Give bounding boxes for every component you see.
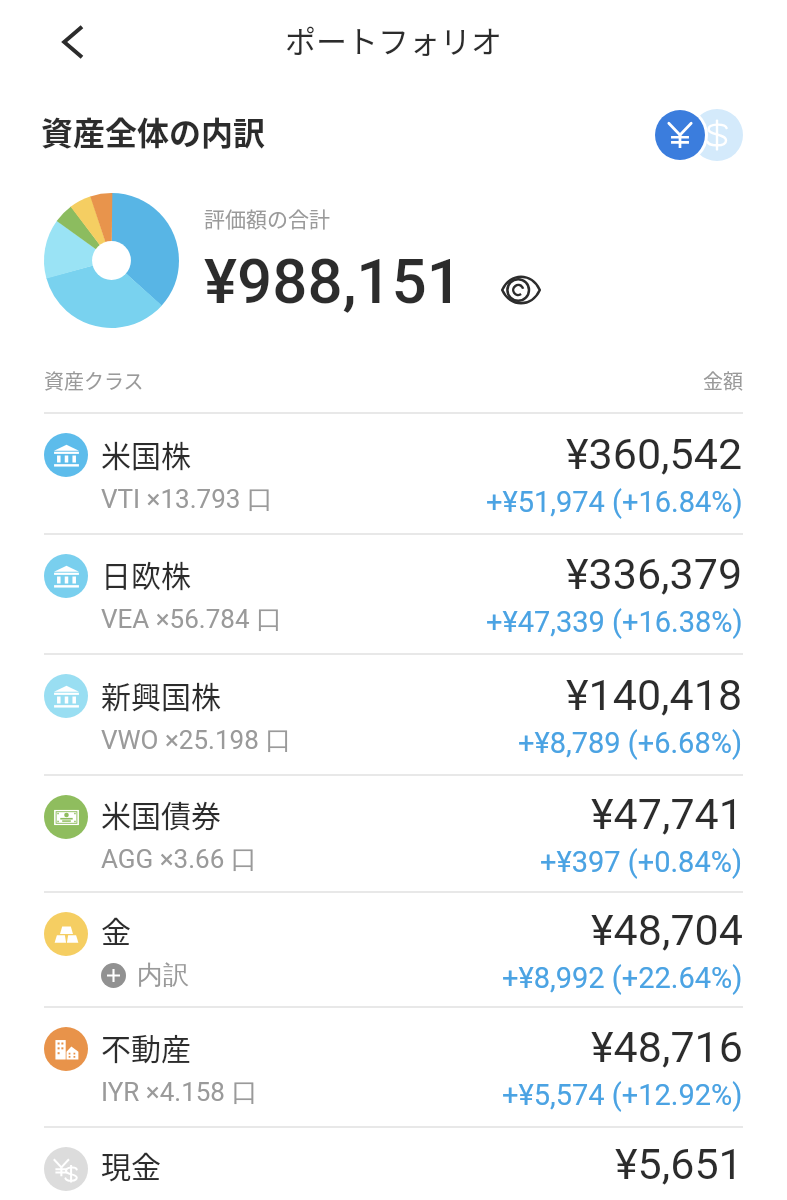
staticText: 金額 xyxy=(703,366,743,395)
staticText: AGG ×3.66 口 xyxy=(101,843,257,876)
staticText: ¥360,542 xyxy=(566,429,743,479)
staticText: 金 xyxy=(101,908,131,951)
staticText: 日欧株 xyxy=(101,552,191,595)
button[interactable]: 日欧株 xyxy=(0,535,787,655)
button[interactable]: 金 xyxy=(0,893,787,1008)
staticText: 現金 xyxy=(101,1143,161,1186)
staticText: VWO ×25.198 口 xyxy=(101,724,292,757)
staticText: ポートフォリオ xyxy=(285,17,502,62)
staticText: ¥336,379 xyxy=(566,549,743,599)
staticText: 米国株 xyxy=(101,432,191,475)
staticText: +¥5,574 (+12.92%) xyxy=(502,1078,743,1112)
button[interactable]: Back xyxy=(44,14,100,70)
staticText: VTI ×13.793 口 xyxy=(101,483,273,516)
button[interactable]: 不動産 xyxy=(0,1008,787,1128)
staticText: +¥397 (+0.84%) xyxy=(540,845,743,879)
staticText: 内訳 xyxy=(137,959,189,992)
staticText: +¥51,974 (+16.84%) xyxy=(486,485,743,519)
staticText: 新興国株 xyxy=(101,673,221,716)
button[interactable]: 現金 xyxy=(0,1128,787,1200)
staticText: VEA ×56.784 口 xyxy=(101,603,282,636)
button[interactable]: 米国債券 xyxy=(0,776,787,893)
staticText: 不動産 xyxy=(101,1025,191,1068)
staticText: ¥48,704 xyxy=(591,905,743,955)
staticText: ¥5,651 xyxy=(615,1139,743,1189)
staticText: +¥47,339 (+16.38%) xyxy=(486,605,743,639)
staticText: ¥140,418 xyxy=(566,670,743,720)
staticText: 米国債券 xyxy=(101,792,221,835)
staticText: ¥988,151 xyxy=(204,245,463,318)
staticText: 資産クラス xyxy=(44,366,144,395)
staticText: +¥8,789 (+6.68%) xyxy=(518,726,743,760)
button[interactable]: Hide amount xyxy=(497,266,545,314)
staticText: 評価額の合計 xyxy=(204,203,330,233)
button[interactable]: Japanese yen xyxy=(655,110,705,160)
staticText: +¥8,992 (+22.64%) xyxy=(502,961,743,995)
staticText: 資産全体の内訳 xyxy=(41,108,266,154)
staticText: ¥47,741 xyxy=(591,789,743,839)
button[interactable]: US dollar xyxy=(691,109,743,161)
button[interactable]: 新興国株 xyxy=(0,655,787,776)
button[interactable]: 米国株 xyxy=(0,414,787,535)
staticText: ¥48,716 xyxy=(591,1022,743,1072)
staticText: IYR ×4.158 口 xyxy=(101,1076,258,1109)
